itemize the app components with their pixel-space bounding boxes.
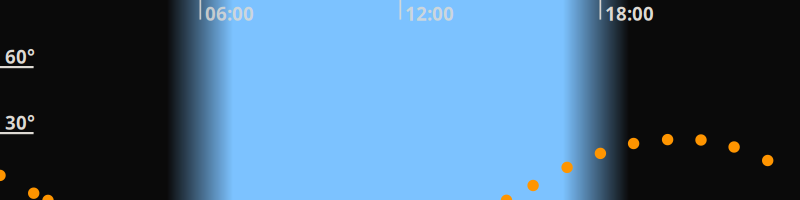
staticText: 12:00 (405, 1, 454, 26)
staticText: 06:00 (205, 1, 254, 26)
staticText: 30° (5, 110, 35, 135)
staticText: 60° (5, 44, 35, 69)
staticText: 18:00 (605, 1, 654, 26)
